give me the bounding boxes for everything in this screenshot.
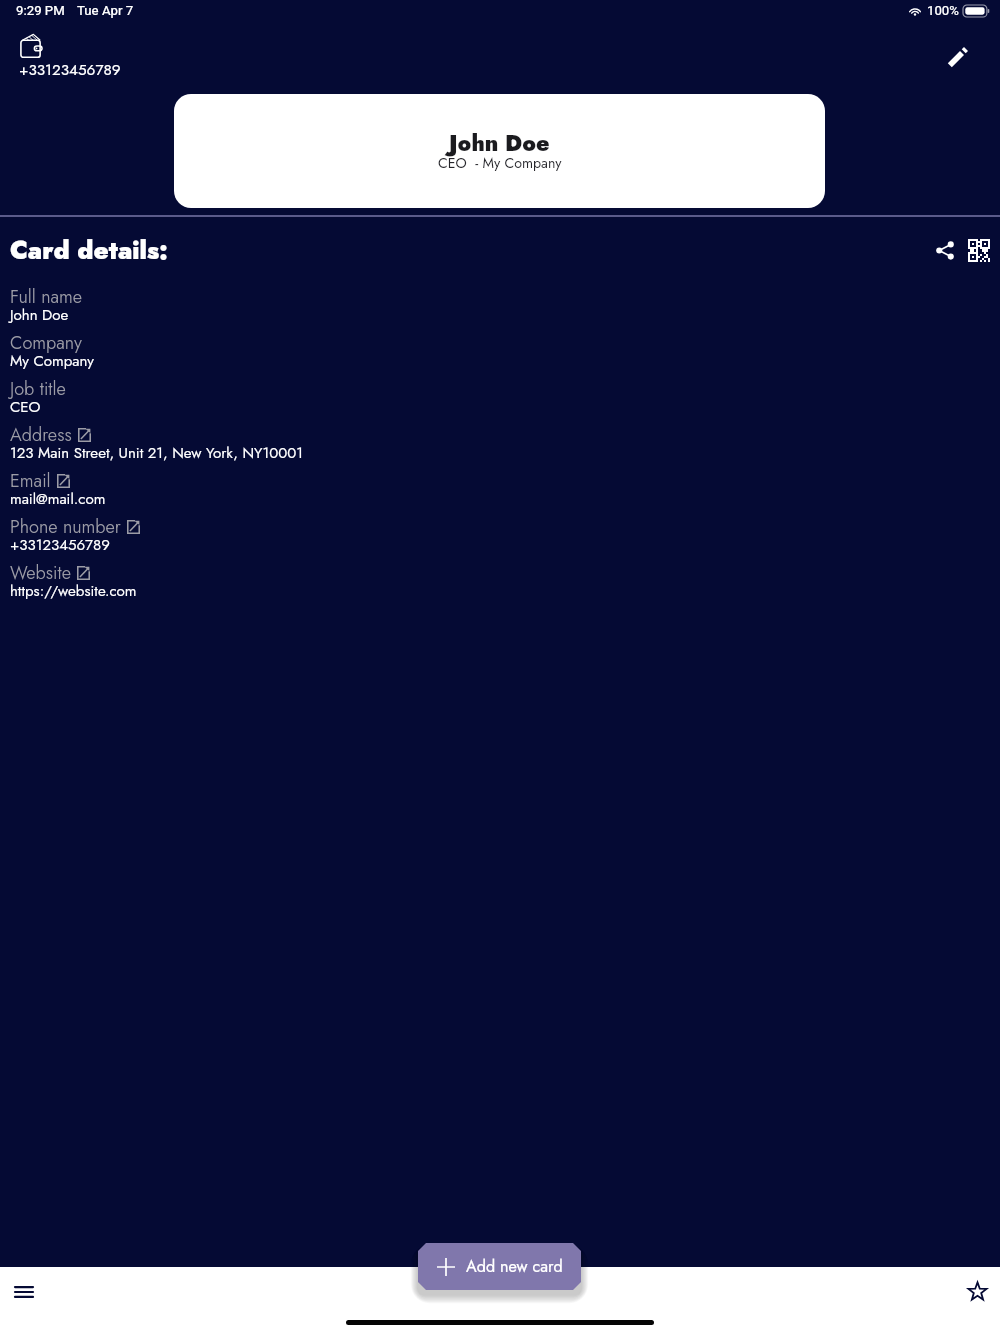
staticText: Website bbox=[10, 560, 71, 586]
button[interactable]: Share bbox=[921, 226, 969, 274]
staticText: John Doe bbox=[10, 304, 69, 326]
staticText: Full name bbox=[10, 284, 83, 310]
staticText: Job title bbox=[10, 376, 66, 402]
button[interactable]: Company bbox=[10, 329, 1000, 375]
staticText: Card details: bbox=[10, 232, 168, 268]
staticText: Phone number bbox=[10, 514, 121, 540]
staticText: Address bbox=[10, 422, 72, 448]
button[interactable]: Phone number bbox=[10, 513, 1000, 559]
button[interactable]: Job title bbox=[10, 375, 1000, 421]
staticText: https://website.com bbox=[10, 580, 137, 602]
staticText: Company bbox=[10, 330, 82, 356]
button[interactable]: Favourites bbox=[953, 1267, 1000, 1315]
button[interactable]: Website bbox=[10, 559, 1000, 605]
staticText: mail@mail.com bbox=[10, 488, 106, 510]
staticText: My Company bbox=[10, 350, 94, 372]
button[interactable]: Edit card bbox=[933, 33, 981, 81]
button[interactable]: Add new card bbox=[418, 1243, 581, 1290]
staticText: +33123456789 bbox=[19, 59, 121, 81]
staticText: John Doe bbox=[449, 127, 550, 159]
button[interactable]: Menu bbox=[0, 1268, 48, 1316]
button[interactable]: Show QR code bbox=[955, 226, 1000, 274]
staticText: Email bbox=[10, 468, 51, 494]
button[interactable]: Full name bbox=[10, 283, 1000, 329]
staticText: +33123456789 bbox=[10, 534, 110, 556]
button[interactable]: Email bbox=[10, 467, 1000, 513]
staticText: CEO bbox=[10, 396, 41, 418]
button[interactable]: John Doe bbox=[174, 94, 825, 208]
staticText: Add new card bbox=[466, 1255, 563, 1278]
staticText: 100% bbox=[927, 3, 959, 18]
staticText: 123 Main Street, Unit 21, New York, NY10… bbox=[10, 442, 304, 464]
staticText: Tue Apr 7 bbox=[77, 3, 134, 18]
staticText: CEO - My Company bbox=[438, 153, 562, 174]
staticText: 9:29 PM bbox=[16, 3, 65, 18]
button[interactable]: Address bbox=[10, 421, 1000, 467]
